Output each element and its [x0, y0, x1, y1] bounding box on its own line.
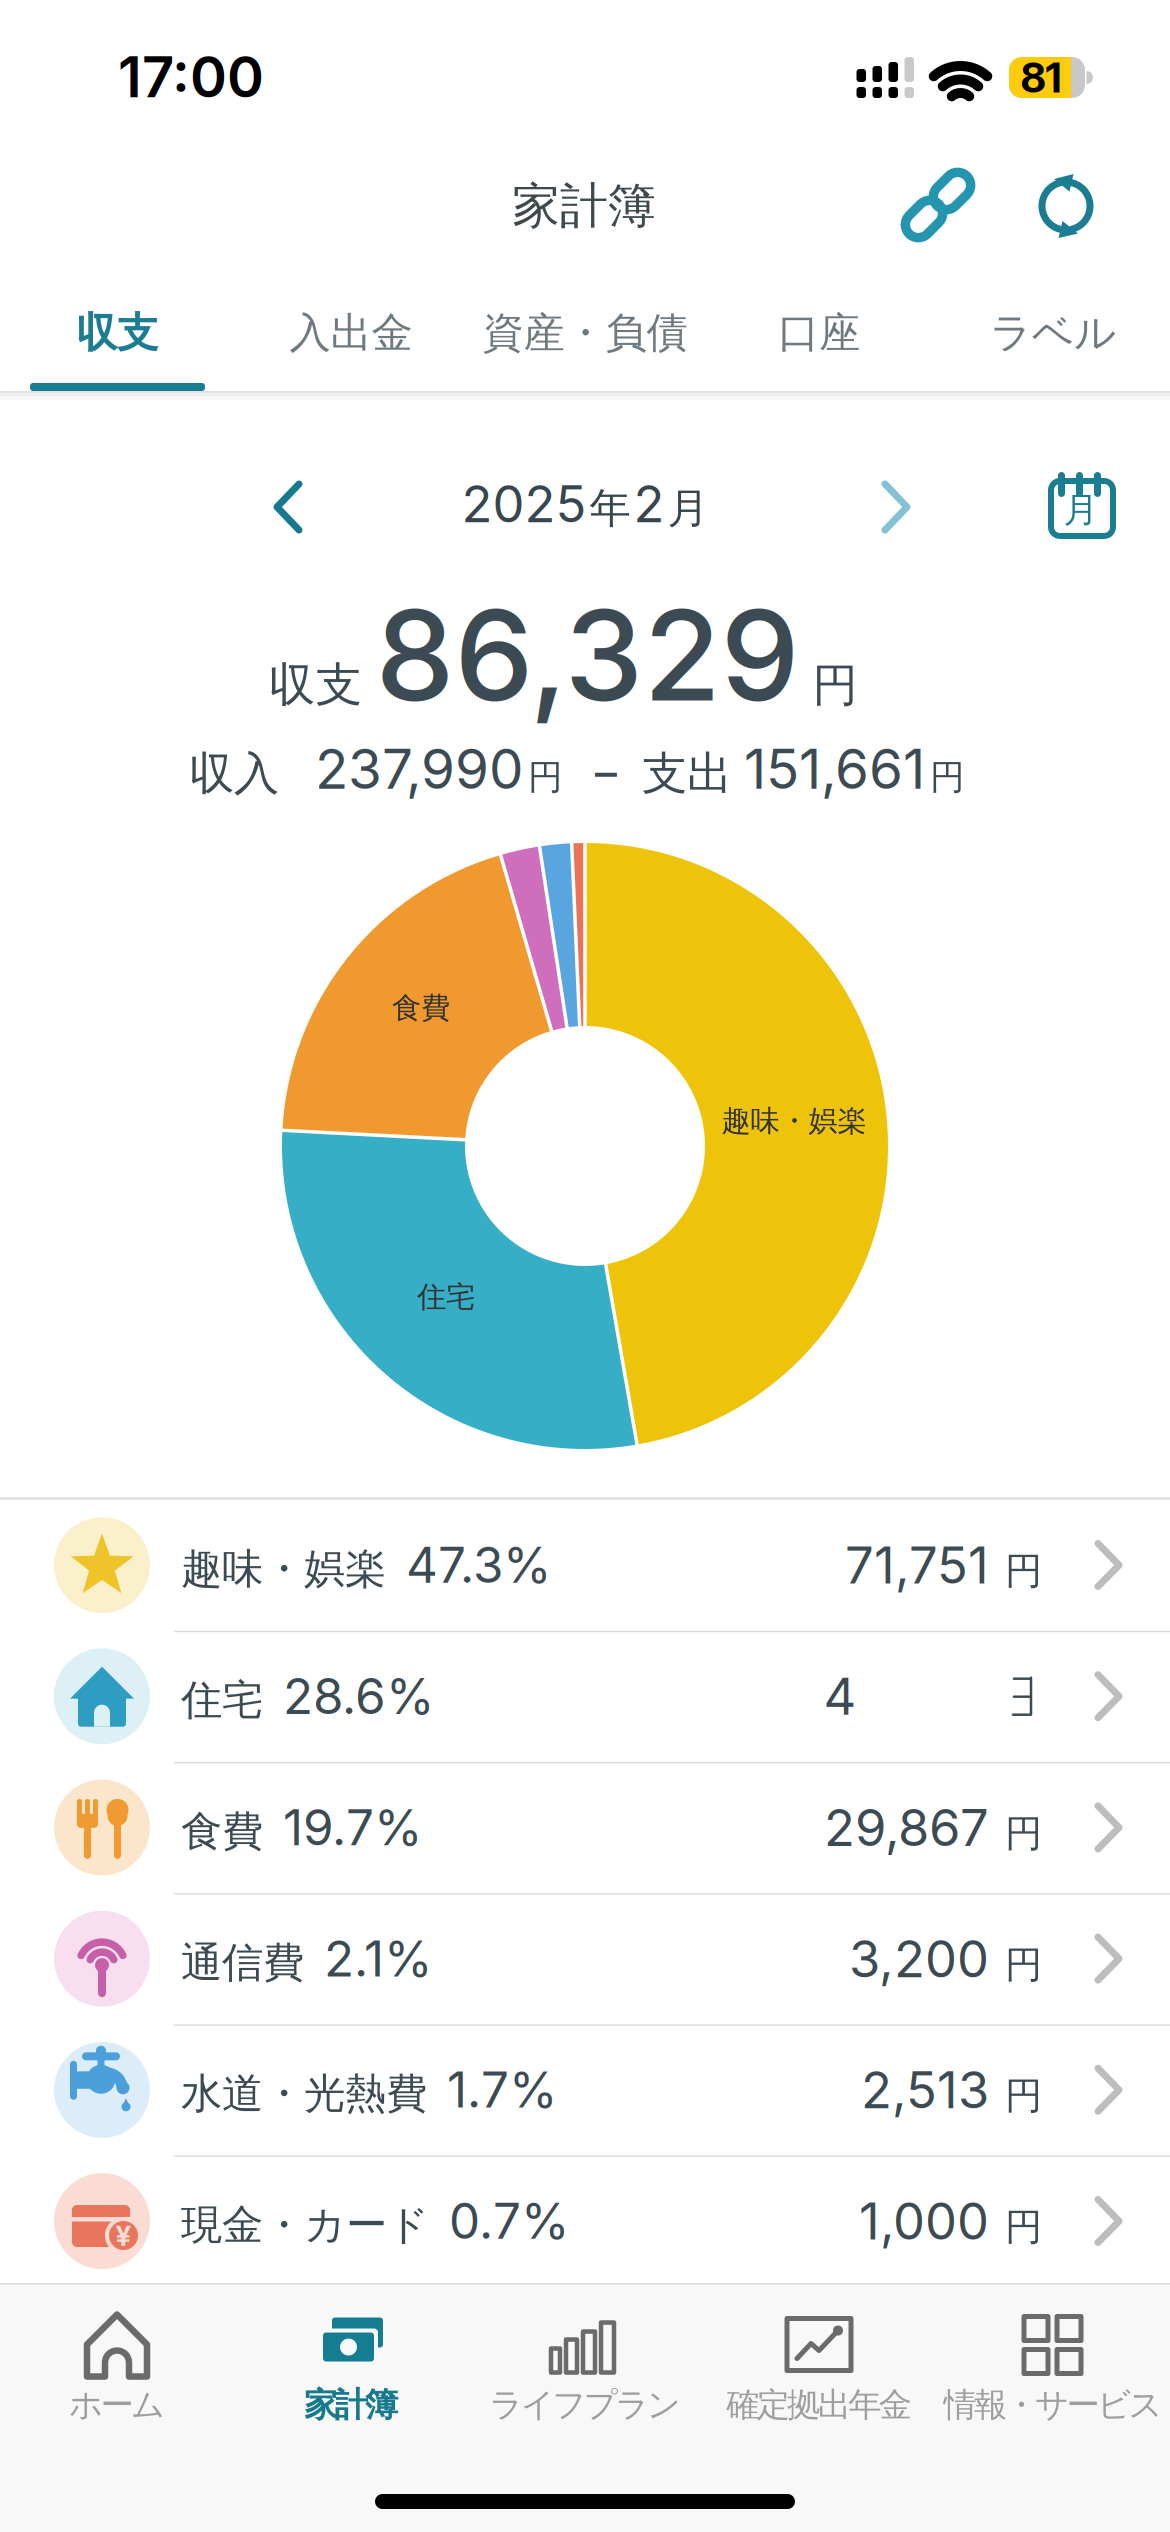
- staticText: ホーム: [69, 2384, 165, 2425]
- staticText: 4: [823, 1666, 856, 1726]
- staticText: 17:00: [118, 44, 264, 110]
- staticText: 円: [1005, 1548, 1042, 1594]
- staticText: ラベル: [990, 308, 1116, 358]
- staticText: 現金・カード: [181, 2200, 429, 2250]
- button[interactable]: 次の月: [857, 467, 937, 547]
- staticText: 円: [1005, 2073, 1042, 2119]
- staticText: 47.3%: [406, 1536, 551, 1594]
- button[interactable]: ラベル: [936, 293, 1170, 373]
- staticText: 住宅: [181, 1675, 263, 1726]
- staticText: 資産・負債: [482, 308, 687, 358]
- staticText: 0.7%: [449, 2192, 569, 2250]
- button[interactable]: 趣味・娯楽: [0, 1499, 1170, 1631]
- staticText: 29,867: [824, 1798, 989, 1857]
- button[interactable]: 食費: [0, 1762, 1170, 1893]
- button[interactable]: 更新: [1021, 161, 1111, 251]
- staticText: 通信費: [181, 1937, 304, 1988]
- staticText: 口座: [778, 308, 860, 358]
- staticText: 家計簿: [512, 176, 656, 235]
- staticText: 19.7%: [283, 1798, 422, 1856]
- staticText: 収入: [189, 746, 279, 801]
- staticText: ¥: [115, 2219, 131, 2252]
- staticText: 年: [589, 483, 630, 534]
- staticText: −: [590, 743, 622, 799]
- staticText: 3,200: [849, 1929, 989, 1989]
- button[interactable]: 口座: [702, 293, 936, 373]
- button[interactable]: 住宅: [0, 1631, 1170, 1762]
- staticText: 円: [528, 756, 563, 798]
- staticText: ライフプラン: [489, 2384, 681, 2425]
- button[interactable]: 月を選択: [1048, 465, 1116, 543]
- button[interactable]: 入出金: [234, 293, 468, 373]
- staticText: 円: [1005, 1811, 1042, 1856]
- staticText: 入出金: [289, 308, 412, 358]
- staticText: 2,513: [861, 2060, 989, 2120]
- staticText: 71,751: [845, 1535, 989, 1595]
- staticText: 趣味・娯楽: [721, 1103, 866, 1139]
- staticText: 月: [1063, 489, 1098, 531]
- staticText: 1,000: [859, 2191, 989, 2251]
- staticText: 水道・光熱費: [181, 2068, 427, 2119]
- staticText: 確定拠出年金: [726, 2384, 912, 2425]
- staticText: 28.6%: [283, 1667, 434, 1725]
- staticText: 食費: [181, 1806, 263, 1857]
- staticText: 月: [667, 483, 708, 534]
- staticText: 81: [1020, 53, 1061, 102]
- staticText: 2: [633, 474, 664, 534]
- staticText: 円: [1005, 2204, 1042, 2250]
- staticText: 円: [812, 658, 857, 713]
- staticText: 2.1%: [324, 1929, 432, 1988]
- button[interactable]: 前の月: [247, 467, 327, 547]
- staticText: 住宅: [417, 1279, 475, 1315]
- staticText: 収支: [268, 656, 362, 714]
- button[interactable]: 資産・負債: [468, 293, 702, 373]
- button[interactable]: ¥: [0, 2155, 1170, 2287]
- staticText: 86,329: [375, 581, 799, 729]
- staticText: 収支: [76, 308, 158, 358]
- staticText: 情報・サービス: [943, 2384, 1162, 2425]
- staticText: 円: [1005, 1942, 1042, 1988]
- button[interactable]: 水道・光熱費: [0, 2024, 1170, 2155]
- staticText: 食費: [392, 990, 450, 1026]
- button[interactable]: 収支: [0, 293, 234, 373]
- button[interactable]: 確定拠出年金: [702, 2288, 936, 2438]
- button[interactable]: 家計簿: [234, 2288, 468, 2438]
- button[interactable]: ホーム: [0, 2288, 234, 2438]
- staticText: 円: [930, 756, 965, 798]
- button[interactable]: 通信費: [0, 1893, 1170, 2024]
- staticText: 237,990: [315, 737, 523, 801]
- button[interactable]: 情報・サービス: [936, 2288, 1170, 2438]
- staticText: 趣味・娯楽: [181, 1544, 386, 1594]
- button[interactable]: ライフプラン: [468, 2288, 702, 2438]
- staticText: 支出: [642, 746, 732, 801]
- staticText: 1.7%: [447, 2061, 557, 2119]
- button[interactable]: 連携: [893, 160, 983, 250]
- staticText: 2025: [461, 474, 586, 534]
- staticText: 家計簿: [304, 2384, 398, 2425]
- staticText: 151,661: [744, 737, 925, 801]
